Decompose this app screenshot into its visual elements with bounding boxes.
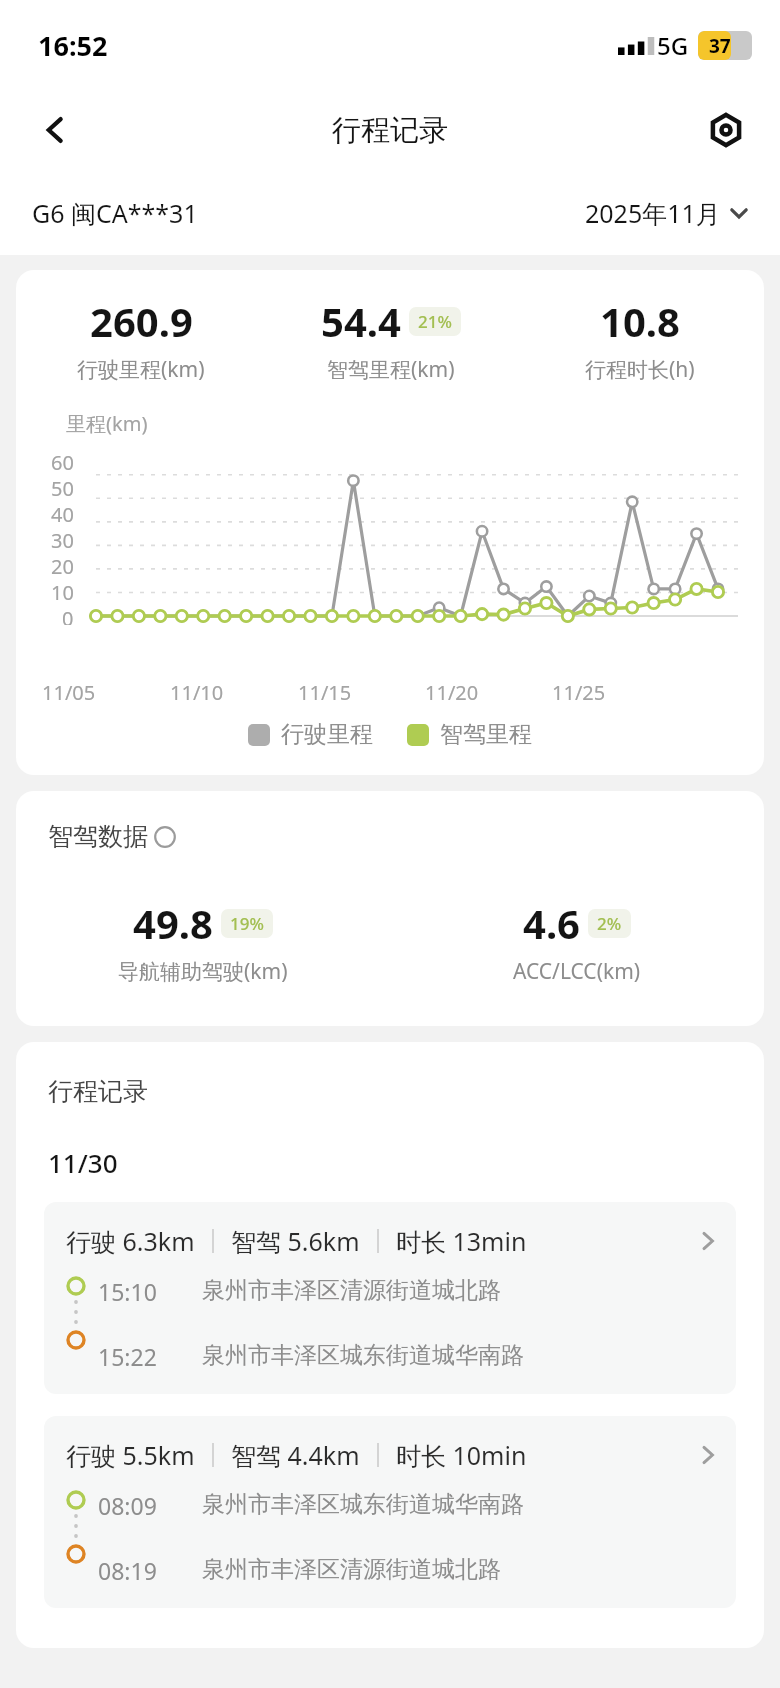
staticText: 10.8 xyxy=(600,294,680,348)
staticText: 导航辅助驾驶(km) xyxy=(118,957,288,986)
staticText: 泉州市丰泽区城东街道城华南路 xyxy=(202,1341,524,1370)
staticText: G6 闽CA***31 xyxy=(32,196,198,230)
other: Help xyxy=(154,826,176,848)
staticText: 40 xyxy=(51,501,74,527)
staticText: 54.4 xyxy=(321,294,401,348)
staticText: 10 xyxy=(51,579,74,605)
button[interactable]: 智驾数据 xyxy=(48,821,176,852)
staticText: 19% xyxy=(230,912,264,935)
staticText: 行驶 5.5km xyxy=(66,1438,195,1472)
staticText: 15:22 xyxy=(98,1341,202,1372)
button[interactable]: Back xyxy=(28,102,84,158)
staticText: 15:10 xyxy=(98,1276,202,1307)
staticText: 5G xyxy=(657,29,689,62)
staticText: 30 xyxy=(51,527,74,553)
staticText: 08:09 xyxy=(98,1490,202,1521)
staticText: 泉州市丰泽区清源街道城北路 xyxy=(202,1276,501,1305)
staticText: 时长 10min xyxy=(396,1438,527,1472)
staticText: 智驾数据 xyxy=(48,821,148,852)
staticText: 37 xyxy=(709,33,731,59)
staticText: 0 xyxy=(62,605,74,625)
button[interactable]: 行驶 5.5km xyxy=(44,1416,736,1608)
staticText: 11/30 xyxy=(48,1145,118,1180)
staticText: ACC/LCC(km) xyxy=(513,957,641,986)
staticText: 11/25 xyxy=(552,679,679,706)
staticText: 智驾 5.6km xyxy=(231,1224,360,1258)
staticText: 行程记录 xyxy=(332,112,448,149)
staticText: 11/15 xyxy=(298,679,425,706)
staticText: 11/05 xyxy=(42,679,170,706)
staticText: 行驶里程(km) xyxy=(77,355,205,384)
staticText: 2% xyxy=(597,912,622,935)
staticText: 08:19 xyxy=(98,1555,202,1586)
staticText: 智驾里程 xyxy=(440,720,532,749)
staticText: 21% xyxy=(418,310,452,333)
staticText: 泉州市丰泽区清源街道城北路 xyxy=(202,1555,501,1584)
staticText: 60 xyxy=(51,449,74,475)
staticText: 里程(km) xyxy=(66,410,148,437)
button[interactable]: Settings xyxy=(698,102,754,158)
staticText: 时长 13min xyxy=(396,1224,527,1258)
staticText: 16:52 xyxy=(38,27,108,64)
staticText: 2025年11月 xyxy=(585,196,721,230)
staticText: 行程记录 xyxy=(48,1076,148,1107)
staticText: 智驾 4.4km xyxy=(231,1438,360,1472)
staticText: 49.8 xyxy=(133,896,213,950)
staticText: 4.6 xyxy=(523,896,580,950)
staticText: 20 xyxy=(51,553,74,579)
staticText: 11/20 xyxy=(425,679,552,706)
button[interactable]: 行驶 6.3km xyxy=(44,1202,736,1394)
staticText: 行驶里程 xyxy=(281,720,373,749)
button[interactable]: 2025年11月 xyxy=(585,196,748,230)
staticText: 行驶 6.3km xyxy=(66,1224,195,1258)
staticText: 50 xyxy=(51,475,74,501)
staticText: 260.9 xyxy=(90,294,193,348)
staticText: 11/10 xyxy=(170,679,298,706)
staticText: 行程时长(h) xyxy=(585,355,695,384)
staticText: 智驾里程(km) xyxy=(327,355,455,384)
staticText: 泉州市丰泽区城东街道城华南路 xyxy=(202,1490,524,1519)
